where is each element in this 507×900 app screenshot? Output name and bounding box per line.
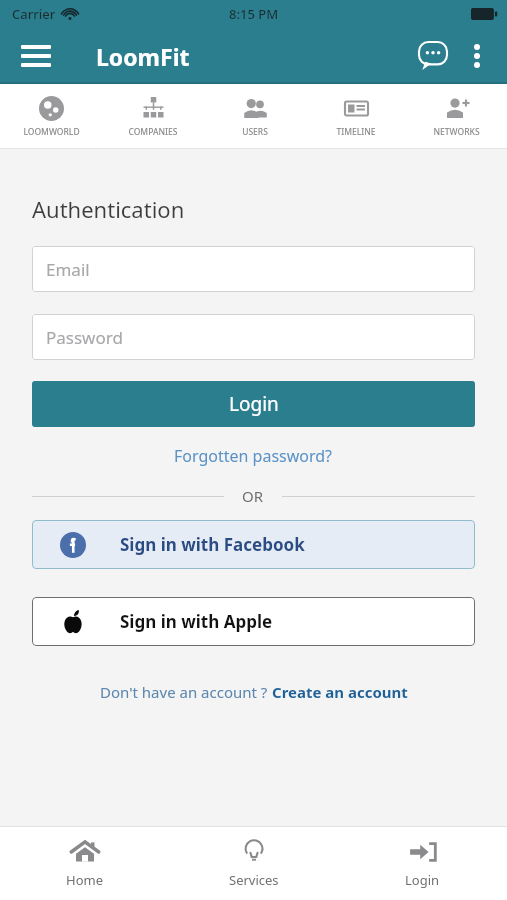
staticText: Services — [229, 871, 279, 889]
staticText: NETWORKS — [433, 126, 480, 138]
staticText: Password — [46, 326, 123, 349]
staticText: Home — [66, 871, 103, 889]
staticText: TIMELINE — [336, 126, 376, 138]
button[interactable]: Don't have an account ? — [32, 682, 475, 702]
button[interactable]: LOOMWORLD — [0, 84, 102, 148]
staticText: OR — [242, 486, 264, 506]
button[interactable]: TIMELINE — [305, 84, 406, 148]
button[interactable]: Sign in with Apple — [32, 597, 475, 646]
staticText: Forgotten password? — [174, 445, 333, 467]
button[interactable]: NETWORKS — [406, 84, 507, 148]
button[interactable]: Open navigation menu — [16, 36, 56, 76]
button[interactable]: USERS — [204, 84, 305, 148]
staticText: Login — [405, 871, 440, 889]
staticText: Sign in with Facebook — [120, 533, 305, 556]
staticText: COMPANIES — [128, 126, 178, 138]
button[interactable]: Sign in with Facebook — [32, 520, 475, 569]
staticText: Create an account — [272, 682, 408, 702]
button[interactable]: Login — [338, 826, 507, 900]
button[interactable]: Password — [32, 314, 475, 360]
staticText: Login — [229, 391, 279, 417]
staticText: Sign in with Apple — [120, 610, 273, 633]
staticText: Don't have an account ? — [100, 682, 272, 702]
staticText: Email — [46, 258, 90, 281]
button[interactable]: Forgotten password? — [32, 445, 475, 467]
button[interactable]: Services — [169, 826, 338, 900]
button[interactable]: Home — [0, 826, 169, 900]
staticText: Carrier — [12, 5, 56, 23]
staticText: 8:15 PM — [229, 5, 279, 23]
button[interactable]: Messages — [411, 34, 455, 78]
staticText: USERS — [242, 126, 268, 138]
staticText: LOOMWORLD — [23, 126, 80, 138]
staticText: Authentication — [32, 194, 185, 224]
staticText: LoomFit — [96, 41, 190, 72]
button[interactable]: More options — [455, 34, 499, 78]
button[interactable]: Login — [32, 381, 475, 427]
button[interactable]: Email — [32, 246, 475, 292]
button[interactable]: COMPANIES — [102, 84, 204, 148]
